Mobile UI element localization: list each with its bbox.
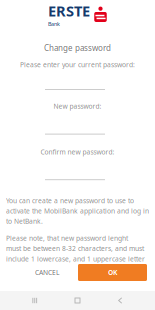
button[interactable]: Back [105, 291, 135, 310]
button[interactable]: Home [62, 291, 92, 310]
staticText: include 1 lowercase, and 1 uppercase let… [6, 254, 145, 263]
staticText: CANCEL [35, 268, 59, 277]
staticText: ERSTE [48, 1, 90, 20]
staticText: New password: [53, 102, 101, 111]
button[interactable]: OK [78, 264, 147, 281]
button[interactable]: Recent apps [20, 291, 50, 310]
staticText: activate the MobilBank application and l… [6, 206, 149, 215]
staticText: Confirm new password: [40, 147, 114, 156]
staticText: Bank [48, 20, 60, 28]
staticText: Please note, that new password lenght [6, 234, 128, 243]
button[interactable]: CANCEL [0, 264, 78, 281]
staticText: You can create a new password to use to [6, 196, 134, 205]
staticText: to NetBank. [6, 217, 43, 226]
staticText: Change password [44, 43, 111, 53]
staticText: Please enter your current password: [20, 60, 135, 69]
staticText: must be between 8-32 characters, and mus… [6, 244, 144, 253]
staticText: OK [108, 268, 117, 277]
